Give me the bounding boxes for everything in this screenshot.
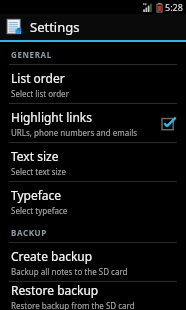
button[interactable]: Typeface	[0, 182, 186, 220]
staticText: Backup all notes to the SD card	[11, 266, 128, 277]
staticText: Text size	[11, 148, 59, 164]
other: App icon	[5, 18, 23, 36]
staticText: GENERAL	[11, 49, 52, 60]
staticText: Select list order	[11, 88, 69, 99]
button[interactable]: App icon	[0, 14, 186, 40]
staticText: List order	[11, 70, 65, 86]
staticText: 5:28	[165, 1, 183, 13]
staticText: URLs, phone numbers and emails	[11, 127, 138, 138]
other: Highlight links enabled	[162, 116, 176, 130]
button[interactable]: Highlight links	[0, 104, 186, 142]
staticText: Typeface	[11, 187, 62, 203]
staticText: Select text size	[11, 166, 66, 177]
staticText: Select typeface	[11, 205, 68, 216]
staticText: Restore backup from the SD card	[11, 300, 135, 310]
staticText: BACKUP	[11, 227, 47, 238]
button[interactable]: Create backup	[0, 243, 186, 281]
staticText: Settings	[30, 18, 80, 36]
staticText: Highlight links	[11, 109, 92, 125]
staticText: Create backup	[11, 248, 93, 264]
button[interactable]: Text size	[0, 143, 186, 181]
staticText: Restore backup	[11, 282, 99, 298]
button[interactable]: Restore backup	[0, 282, 186, 310]
button[interactable]: List order	[0, 65, 186, 103]
